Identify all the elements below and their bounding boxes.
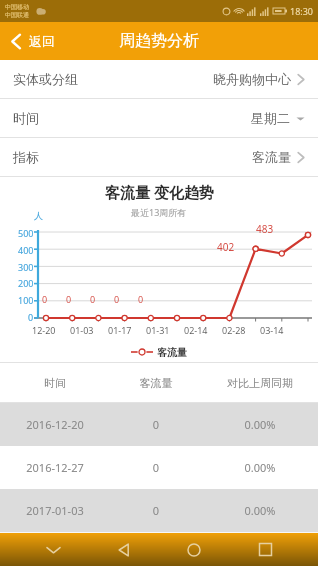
staticText: 对比上周同期 bbox=[202, 376, 318, 390]
staticText: 01-17 bbox=[108, 324, 132, 336]
staticText: 02-14 bbox=[184, 324, 208, 336]
button[interactable]: 时间 bbox=[0, 363, 318, 402]
staticText: 中国移动 bbox=[5, 3, 29, 11]
button[interactable]: Recent apps bbox=[248, 533, 282, 566]
staticText: 晓舟购物中心 bbox=[213, 71, 291, 87]
button[interactable]: Back bbox=[107, 533, 141, 566]
staticText: 中国联通 bbox=[5, 11, 29, 19]
staticText: 0.00% bbox=[202, 460, 318, 475]
staticText: 客流量 bbox=[110, 376, 202, 390]
staticText: 0 bbox=[42, 293, 48, 305]
staticText: 0 bbox=[114, 293, 120, 305]
button[interactable]: 时间 bbox=[0, 99, 318, 137]
staticText: 客流量 bbox=[157, 346, 187, 359]
staticText: 0 bbox=[66, 293, 72, 305]
staticText: 402 bbox=[217, 240, 235, 254]
staticText: 0.00% bbox=[202, 417, 318, 432]
button[interactable]: 2016-12-20 bbox=[0, 403, 318, 446]
staticText: 2016-12-20 bbox=[0, 417, 110, 432]
staticText: 12-20 bbox=[32, 324, 56, 336]
staticText: 03-14 bbox=[260, 324, 284, 336]
staticText: 0 bbox=[110, 460, 202, 475]
button[interactable]: 2016-12-27 bbox=[0, 446, 318, 489]
staticText: 01-03 bbox=[70, 324, 94, 336]
staticText: 2016-12-27 bbox=[0, 460, 110, 475]
button[interactable]: Hide keyboard bbox=[36, 533, 70, 566]
staticText: 500 bbox=[18, 227, 34, 239]
staticText: 02-28 bbox=[222, 324, 246, 336]
staticText: 实体或分组 bbox=[13, 71, 78, 87]
staticText: 0 bbox=[110, 417, 202, 432]
staticText: 0.00% bbox=[202, 503, 318, 518]
staticText: 100 bbox=[18, 294, 34, 306]
staticText: 时间 bbox=[13, 110, 39, 126]
staticText: 星期二 bbox=[251, 110, 290, 126]
staticText: 18:30 bbox=[290, 5, 314, 17]
staticText: 时间 bbox=[0, 376, 110, 390]
staticText: 最近13周所有 bbox=[131, 206, 187, 218]
staticText: 200 bbox=[18, 277, 34, 289]
staticText: 0 bbox=[138, 293, 144, 305]
staticText: 0 bbox=[110, 503, 202, 518]
staticText: 0 bbox=[90, 293, 96, 305]
button[interactable]: 2017-01-03 bbox=[0, 489, 318, 532]
staticText: 周趋势分析 bbox=[119, 31, 199, 51]
staticText: 人 bbox=[34, 210, 43, 221]
button[interactable]: 指标 bbox=[0, 138, 318, 176]
button[interactable]: 实体或分组 bbox=[0, 60, 318, 98]
button[interactable]: 返回 bbox=[0, 22, 67, 60]
button[interactable]: Home bbox=[177, 533, 211, 566]
staticText: 0 bbox=[28, 311, 34, 323]
staticText: 客流量 bbox=[252, 149, 291, 165]
staticText: 指标 bbox=[13, 149, 39, 165]
staticText: 400 bbox=[18, 244, 34, 256]
staticText: 客流量 变化趋势 bbox=[105, 182, 214, 202]
staticText: 483 bbox=[256, 222, 274, 236]
staticText: 300 bbox=[18, 261, 34, 273]
staticText: 返回 bbox=[29, 33, 55, 49]
staticText: 2017-01-03 bbox=[0, 503, 110, 518]
staticText: 01-31 bbox=[146, 324, 170, 336]
